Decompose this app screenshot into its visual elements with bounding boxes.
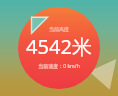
staticText: 4542米 xyxy=(26,33,92,60)
staticText: 当前高度 xyxy=(49,26,69,32)
button[interactable]: Current altitude 4542 meters xyxy=(18,7,100,89)
staticText: 当前速度：0 km/h xyxy=(38,63,80,70)
